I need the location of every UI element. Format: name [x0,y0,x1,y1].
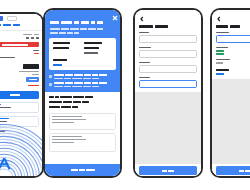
button[interactable]: Menu [0,16,3,21]
button[interactable] [0,91,39,99]
button[interactable] [0,102,39,113]
button[interactable] [45,164,120,176]
button[interactable] [0,116,39,127]
button[interactable]: Back [216,16,222,22]
button[interactable]: Search [7,16,17,21]
button[interactable] [216,35,250,43]
button[interactable] [139,166,197,175]
button[interactable] [216,166,250,175]
button[interactable] [139,50,197,58]
button[interactable] [139,80,197,88]
button[interactable] [139,35,197,43]
button[interactable]: Back [139,16,145,22]
button[interactable] [139,65,197,73]
button[interactable] [0,42,39,47]
button[interactable]: Card type [216,50,224,55]
button[interactable] [26,77,39,82]
button[interactable]: Close [112,15,117,20]
